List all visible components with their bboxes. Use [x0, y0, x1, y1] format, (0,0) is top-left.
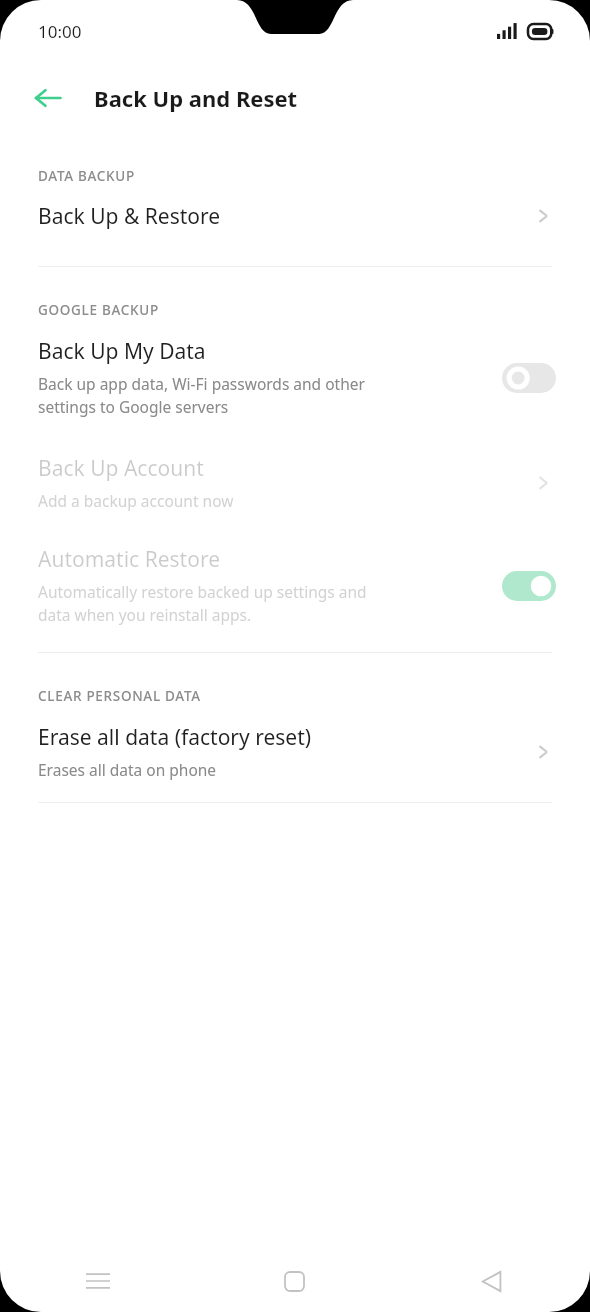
button[interactable]: Back [20, 70, 76, 126]
button[interactable]: Automatic Restore [0, 545, 590, 626]
staticText: 10:00 [38, 20, 82, 43]
staticText: CLEAR PERSONAL DATA [38, 687, 201, 705]
button[interactable]: Recent apps [0, 1250, 196, 1312]
button[interactable]: Back [393, 1250, 590, 1312]
staticText: GOOGLE BACKUP [38, 301, 159, 319]
staticText: Automatic Restore [38, 545, 220, 574]
staticText: Add a backup account now [38, 490, 234, 511]
staticText: Back Up and Reset [94, 83, 298, 113]
button[interactable]: Back Up My Data [0, 337, 590, 418]
button[interactable]: Erase all data (factory reset) [0, 723, 590, 780]
button[interactable]: Back Up & Restore [0, 185, 590, 247]
staticText: Erases all data on phone [38, 759, 217, 780]
staticText: Back Up My Data [38, 337, 206, 366]
staticText: Back Up Account [38, 454, 204, 483]
staticText: DATA BACKUP [38, 167, 135, 185]
button[interactable]: Home [196, 1250, 393, 1312]
button[interactable]: Back Up Account [0, 454, 590, 511]
staticText: Erase all data (factory reset) [38, 723, 312, 752]
staticText: Automatically restore backed up settings… [38, 581, 367, 626]
staticText: Back Up & Restore [38, 202, 532, 231]
staticText: Back up app data, Wi-Fi passwords and ot… [38, 373, 365, 418]
